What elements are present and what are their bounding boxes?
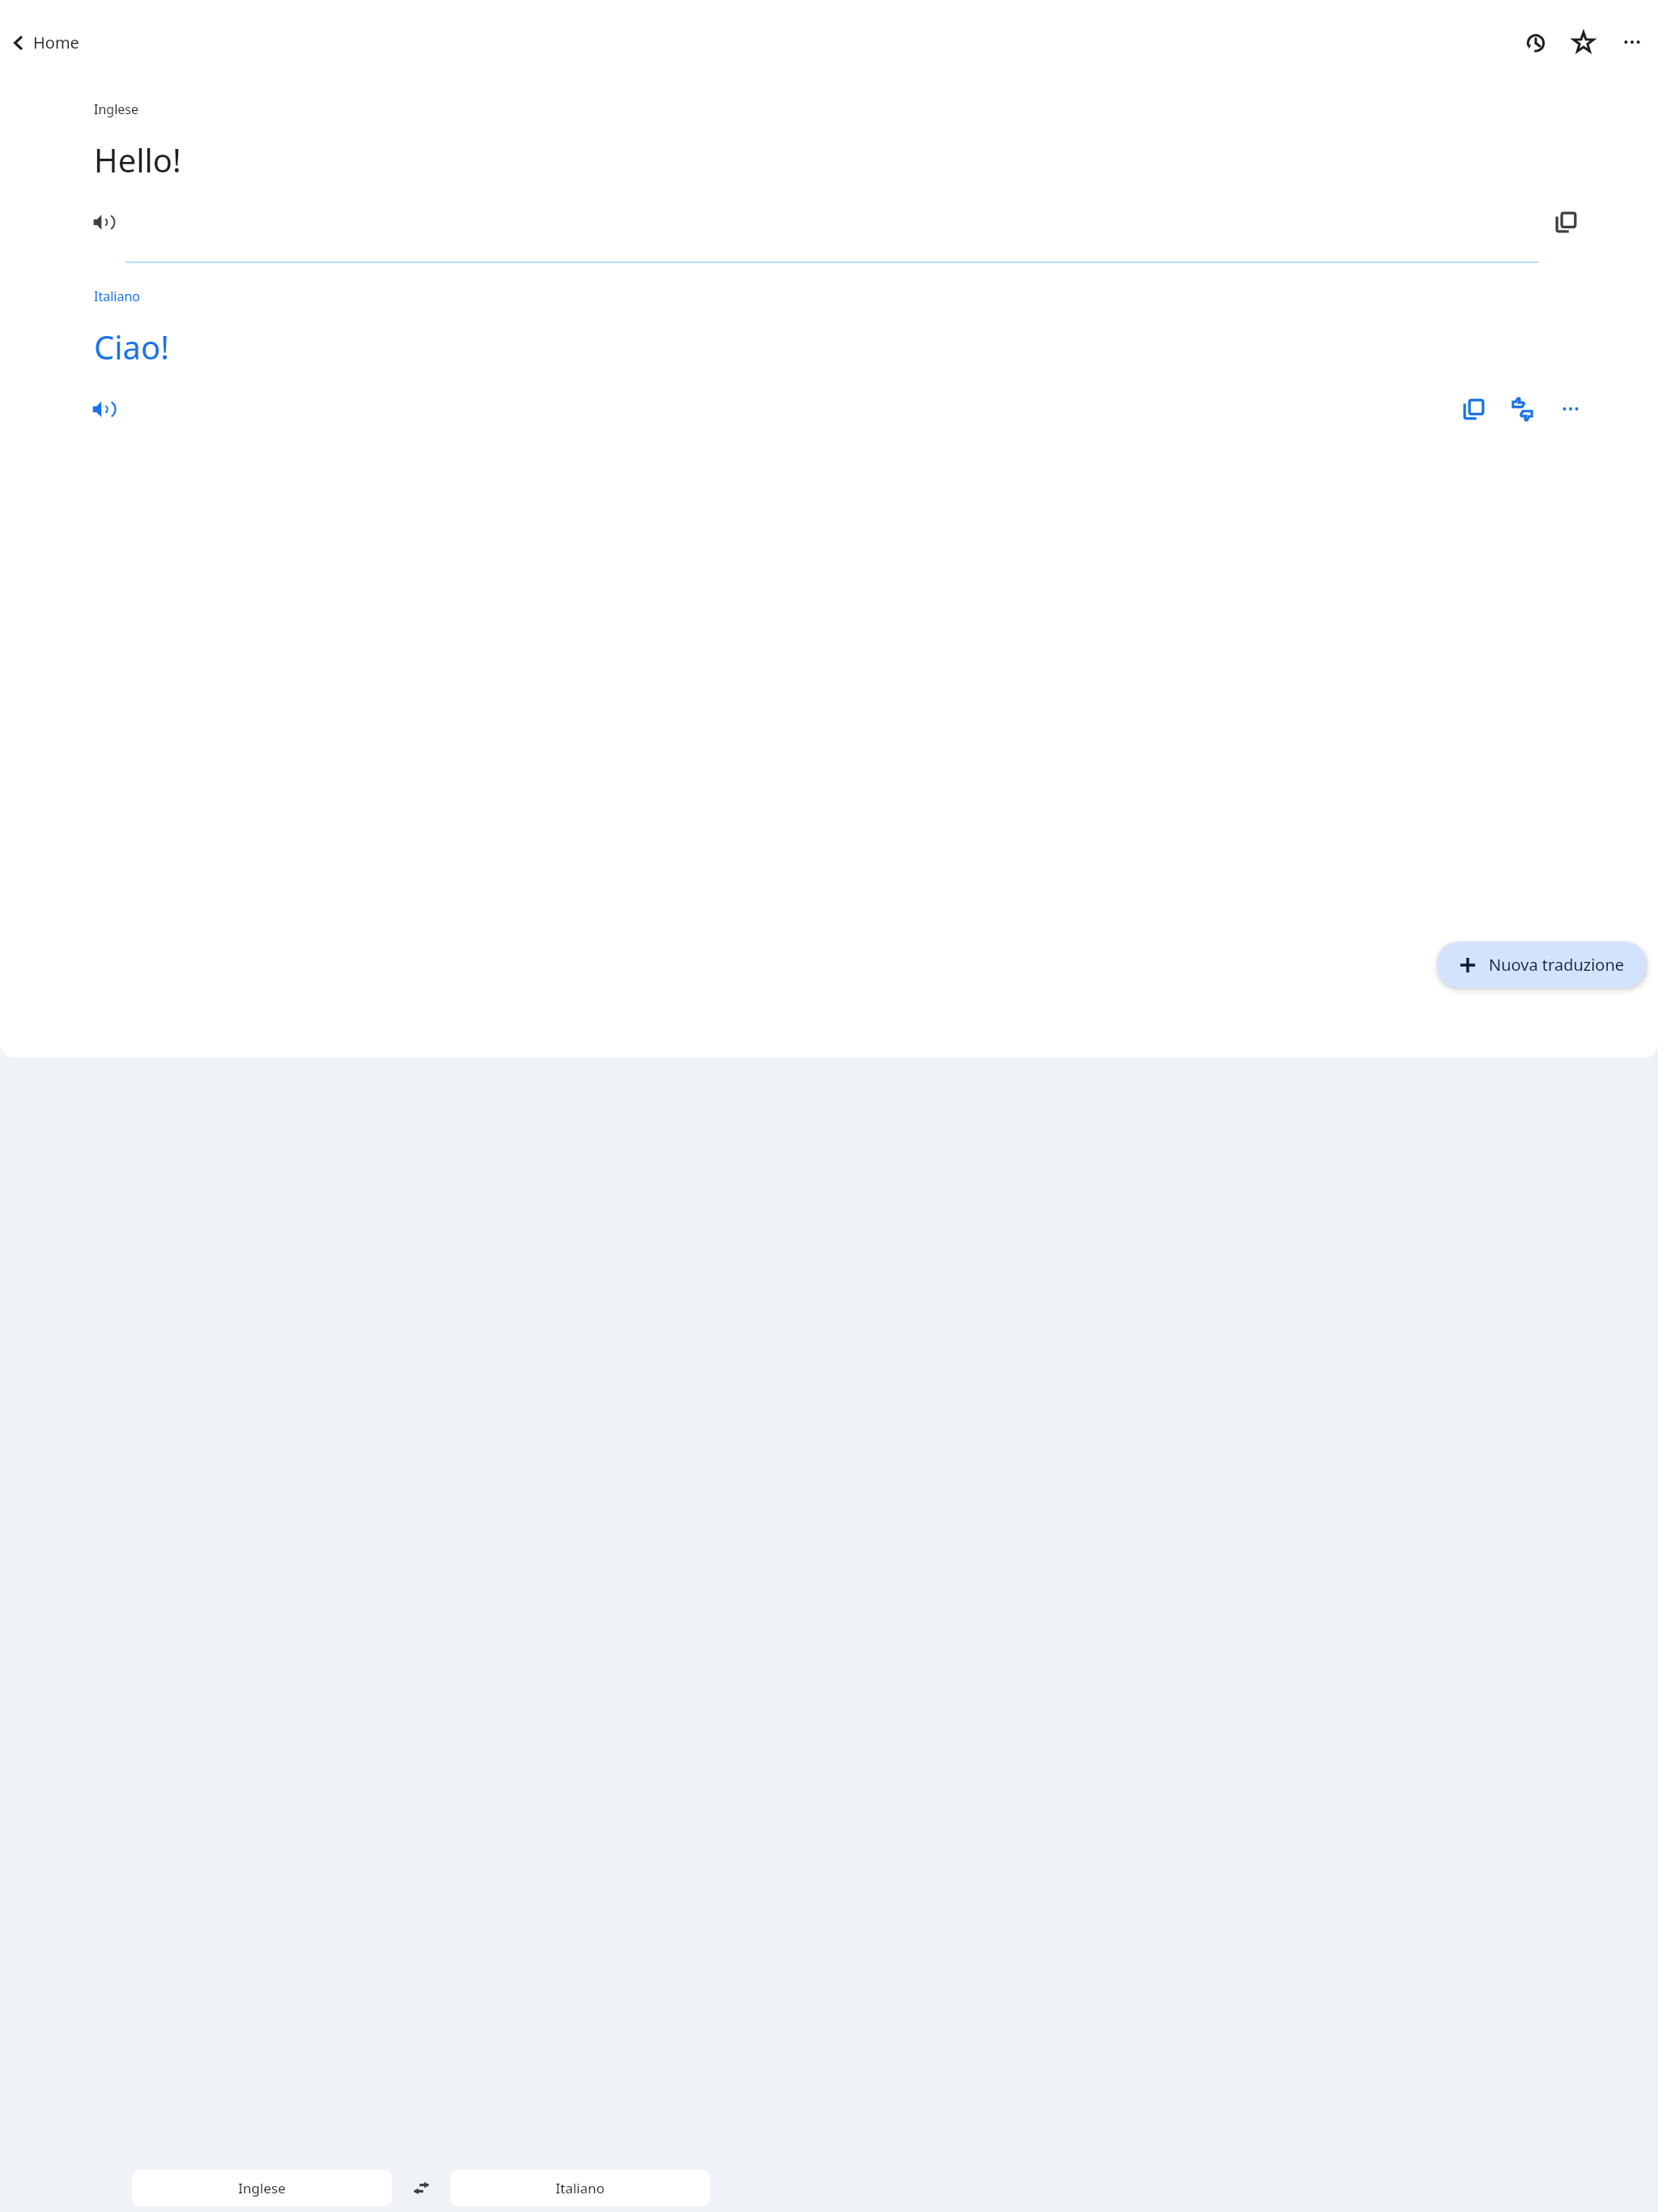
staticText: Hello! [94,138,181,181]
staticText: Inglese [238,2179,286,2197]
button[interactable]: Altre opzioni [1611,21,1653,63]
staticText: Italiano [555,2179,605,2197]
button[interactable]: Invia un feedback [1501,388,1543,430]
staticText: Ciao! [94,325,169,368]
button[interactable]: Inglese [132,2170,392,2206]
button[interactable]: Home [3,25,86,60]
button[interactable]: Ascolta la traduzione [82,388,124,430]
button[interactable]: Cronologia [1514,21,1556,63]
button[interactable]: Copia il testo originale [1545,201,1587,243]
button[interactable]: Italiano [450,2170,710,2206]
button[interactable]: Copia la traduzione [1452,388,1494,430]
staticText: Inglese [94,100,138,118]
button[interactable]: Nuova traduzione [1437,942,1646,988]
button[interactable]: Scambia lingue [392,2168,450,2207]
staticText: Italiano [94,287,140,305]
staticText: Home [33,32,79,53]
button[interactable]: Ascolta il testo originale [82,201,124,243]
button[interactable]: Preferiti [1562,21,1605,63]
button[interactable]: Altre opzioni traduzione [1550,388,1592,430]
staticText: Nuova traduzione [1489,954,1625,976]
